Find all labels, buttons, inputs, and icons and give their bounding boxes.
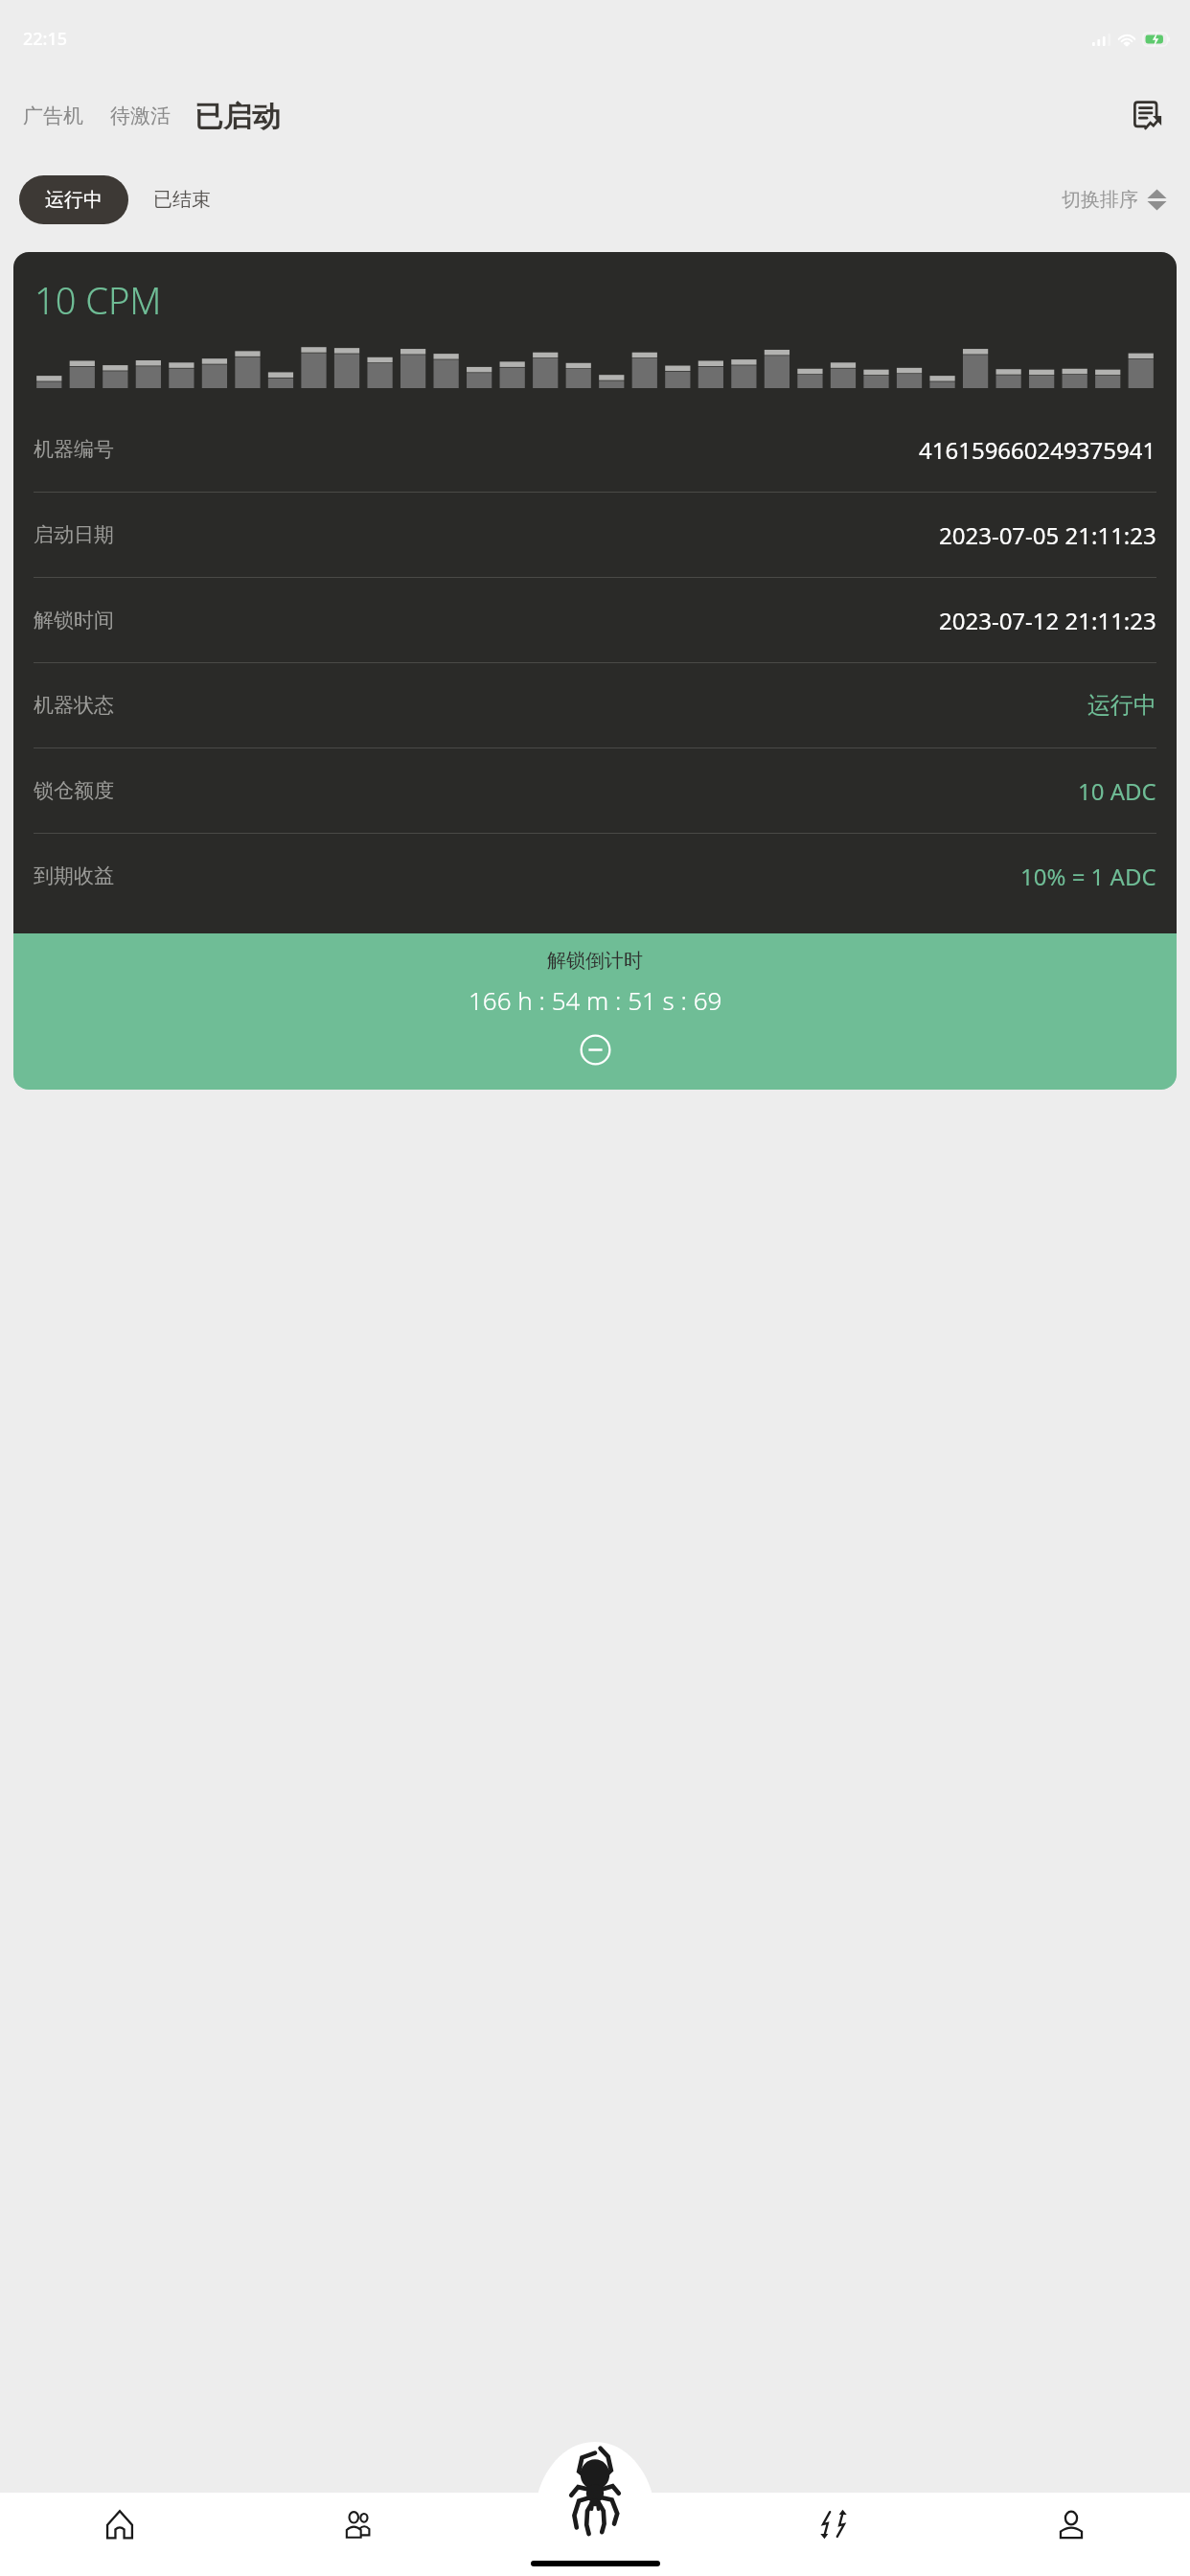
staticText: 10 CPM: [34, 275, 162, 325]
staticText: 解锁时间: [34, 608, 114, 632]
button[interactable]: 广告机: [17, 97, 89, 135]
button[interactable]: 待激活: [104, 97, 176, 135]
staticText: 166 h : 54 m : 51 s : 69: [469, 983, 722, 1017]
staticText: 运行中: [45, 188, 103, 212]
staticText: 22:15: [23, 27, 68, 51]
staticText: 10% = 1 ADC: [1020, 861, 1156, 892]
staticText: 待激活: [110, 103, 171, 128]
button[interactable]: Profile: [952, 2493, 1190, 2576]
staticText: 锁仓额度: [34, 778, 114, 803]
button[interactable]: 运行中: [19, 175, 128, 224]
staticText: 2023-07-05 21:11:23: [939, 519, 1156, 551]
staticText: 416159660249375941: [919, 434, 1156, 466]
button[interactable]: Report: [1121, 90, 1173, 142]
button[interactable]: Collapse: [574, 1028, 616, 1070]
button[interactable]: Spider: [538, 2442, 652, 2538]
button[interactable]: 已启动: [192, 99, 284, 135]
staticText: 到期收益: [34, 863, 114, 888]
staticText: 广告机: [23, 103, 83, 128]
staticText: 切换排序: [1062, 188, 1138, 212]
staticText: 机器编号: [34, 437, 114, 462]
staticText: 运行中: [1087, 691, 1156, 720]
button[interactable]: Home: [0, 2493, 239, 2576]
staticText: 已启动: [195, 99, 281, 135]
button[interactable]: Team: [239, 2493, 477, 2576]
staticText: 已结束: [153, 188, 211, 212]
staticText: 机器状态: [34, 693, 114, 718]
staticText: 解锁倒计时: [547, 949, 643, 973]
staticText: 10 ADC: [1078, 775, 1156, 807]
staticText: 2023-07-12 21:11:23: [939, 605, 1156, 636]
button[interactable]: Exchange: [715, 2493, 952, 2576]
button[interactable]: 切换排序: [1058, 178, 1171, 221]
staticText: 启动日期: [34, 522, 114, 547]
button[interactable]: 10 CPM: [13, 252, 1177, 1090]
button[interactable]: 已结束: [128, 177, 220, 222]
